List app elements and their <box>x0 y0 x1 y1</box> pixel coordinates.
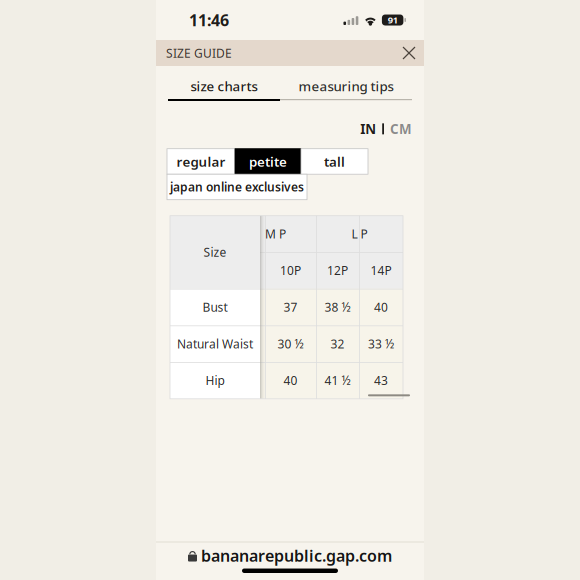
button[interactable]: japan online exclusives <box>167 174 307 200</box>
button[interactable]: CM <box>390 120 412 138</box>
staticText: tall <box>324 153 345 170</box>
staticText: 14P <box>370 262 391 278</box>
button[interactable]: measuring tips <box>280 73 412 99</box>
staticText: 40 <box>374 299 388 315</box>
staticText: 10P <box>280 262 301 278</box>
staticText: regular <box>176 153 225 170</box>
staticText: japan online exclusives <box>170 179 304 195</box>
button[interactable]: IN <box>360 120 376 138</box>
button[interactable]: size charts <box>168 73 280 99</box>
staticText: Bust <box>202 299 227 315</box>
staticText: 41 ½ <box>324 372 350 388</box>
staticText: size charts <box>190 77 257 95</box>
staticText: 33 ½ <box>368 336 394 352</box>
staticText: Hip <box>205 372 224 388</box>
staticText: 43 <box>374 372 388 388</box>
staticText: 40 <box>283 372 297 388</box>
staticText: 30 ½ <box>277 336 303 352</box>
staticText: L P <box>351 226 367 242</box>
staticText: 12P <box>327 262 348 278</box>
staticText: 11:46 <box>189 9 229 31</box>
staticText: CM <box>390 120 412 138</box>
staticText: Size <box>203 244 226 260</box>
staticText: Natural Waist <box>177 336 253 352</box>
staticText: bananarepublic.gap.com <box>201 545 392 566</box>
staticText: 38 ½ <box>324 299 350 315</box>
button[interactable]: tall <box>301 149 368 174</box>
staticText: measuring tips <box>298 77 393 95</box>
staticText: M P <box>265 226 286 242</box>
button[interactable]: petite <box>235 149 301 174</box>
staticText: IN <box>360 120 376 138</box>
staticText: 37 <box>283 299 297 315</box>
staticText: 32 <box>330 336 344 352</box>
staticText: petite <box>249 153 287 170</box>
staticText: SIZE GUIDE <box>166 45 232 61</box>
staticText: 91 <box>388 14 398 26</box>
button[interactable]: regular <box>167 149 235 174</box>
button[interactable]: Close <box>402 46 416 60</box>
